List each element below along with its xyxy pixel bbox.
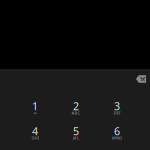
button[interactable]: Delete	[131, 73, 150, 85]
staticText: 5	[73, 124, 79, 138]
staticText: MNO	[112, 135, 122, 141]
staticText: 3	[114, 99, 120, 113]
staticText: DEF	[113, 110, 120, 116]
staticText: ABC	[71, 110, 80, 116]
staticText: ∞	[33, 111, 36, 115]
staticText: 6	[114, 124, 120, 138]
button[interactable]: 3	[96, 96, 137, 121]
button[interactable]: 1	[14, 96, 55, 121]
staticText: 1	[32, 99, 38, 113]
staticText: JKL	[73, 135, 79, 141]
staticText: GHI	[31, 135, 38, 141]
staticText: 4	[32, 124, 38, 138]
button[interactable]: 5	[55, 121, 96, 146]
button[interactable]: 2	[55, 96, 96, 121]
button[interactable]: 4	[14, 121, 55, 146]
button[interactable]: 6	[96, 121, 137, 146]
staticText: 2	[73, 99, 79, 113]
